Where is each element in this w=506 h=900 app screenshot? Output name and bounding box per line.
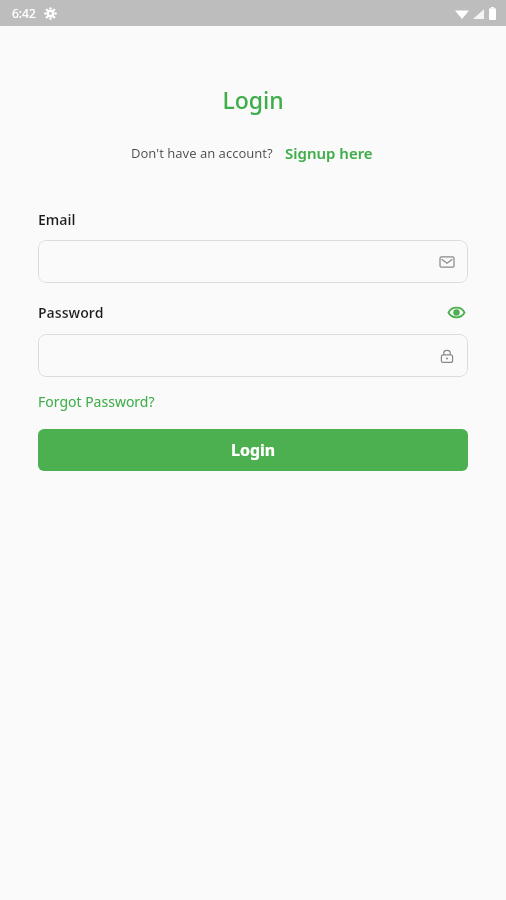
staticText: Forgot Password? xyxy=(38,392,155,411)
button[interactable]: Signup here xyxy=(283,141,375,165)
staticText: Login xyxy=(231,439,276,461)
staticText: Don't have an account? xyxy=(131,144,273,162)
button[interactable]: Login xyxy=(38,429,468,471)
button[interactable]: Email input xyxy=(38,240,468,283)
staticText: Password xyxy=(38,303,104,322)
button[interactable]: Show password xyxy=(445,301,468,324)
staticText: 6:42 xyxy=(12,5,36,21)
button[interactable]: Forgot Password? xyxy=(38,390,155,413)
staticText: Login xyxy=(0,84,506,115)
staticText: Email xyxy=(38,210,76,229)
staticText: Signup here xyxy=(285,143,373,163)
button[interactable]: Password input xyxy=(38,334,468,377)
